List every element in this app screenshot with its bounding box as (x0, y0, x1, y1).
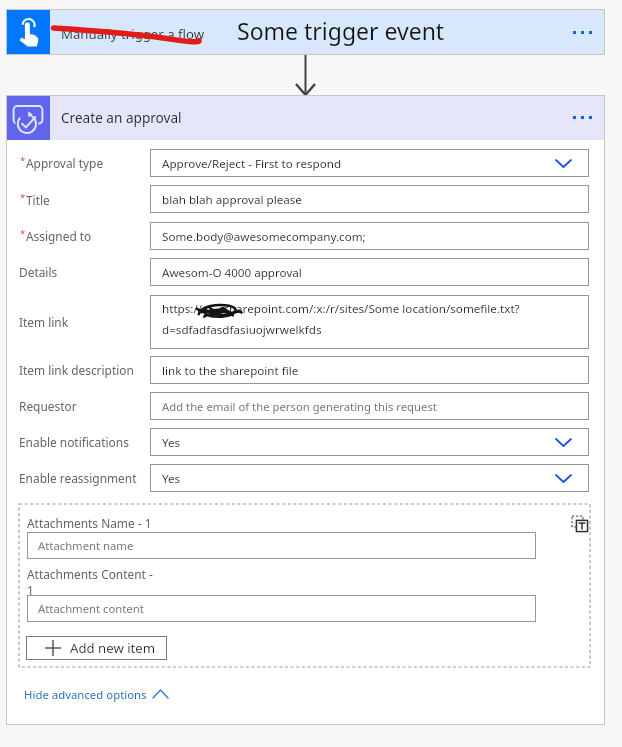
staticText: Attachments Content - (27, 566, 153, 582)
staticText: Attachment content (38, 601, 144, 616)
staticText: Add the email of the person generating t… (162, 399, 437, 414)
staticText: Title (26, 192, 50, 208)
staticText: 1 (27, 582, 34, 598)
button[interactable]: More options (566, 109, 599, 126)
button[interactable]: Awesom-O 4000 approval (150, 258, 589, 286)
staticText: Assigned to (26, 228, 92, 244)
button[interactable]: Switch to text mode (571, 515, 589, 533)
staticText: Requestor (19, 398, 77, 414)
button[interactable]: blah blah approval please (150, 185, 589, 213)
staticText: Some trigger event (237, 15, 445, 46)
staticText: Approval type (26, 155, 104, 171)
staticText: Enable reassignment (19, 470, 137, 486)
button[interactable]: Add the email of the person generating t… (150, 392, 589, 420)
staticText: https:// sharepoint.com/:x:/r/sites/Some… (162, 301, 520, 317)
staticText: Manually trigger a flow (61, 25, 205, 43)
staticText: Yes (162, 471, 181, 487)
staticText: Attachments Name - 1 (27, 515, 152, 531)
button[interactable]: Attachment content (27, 595, 536, 622)
staticText: blah blah approval please (162, 192, 302, 208)
staticText: Details (19, 264, 58, 280)
staticText: Add new item (70, 639, 156, 657)
staticText: * (20, 227, 26, 240)
button[interactable]: Manually trigger a flow (6, 9, 605, 55)
button[interactable]: Some.body@awesomecompany.com; (150, 222, 589, 250)
button[interactable]: Approve/Reject - First to respond (150, 149, 589, 177)
staticText: Some.body@awesomecompany.com; (162, 229, 366, 245)
staticText: Approve/Reject - First to respond (162, 156, 342, 172)
staticText: * (20, 154, 26, 167)
staticText: Create an approval (61, 108, 182, 127)
button[interactable]: link to the sharepoint file (150, 356, 589, 384)
staticText: Hide advanced options (24, 687, 147, 703)
button[interactable]: Create an approval (6, 95, 605, 140)
staticText: link to the sharepoint file (162, 363, 299, 379)
button[interactable]: More options (566, 24, 599, 41)
staticText: d=sdfadfasdfasiuojwrwelkfds (162, 322, 322, 338)
button[interactable]: Yes (150, 428, 589, 456)
staticText: Yes (162, 435, 181, 451)
button[interactable]: Attachment name (27, 532, 536, 559)
button[interactable]: Add new item (26, 636, 167, 660)
staticText: Enable notifications (19, 434, 129, 450)
staticText: Item link (19, 314, 69, 330)
button[interactable]: Yes (150, 464, 589, 492)
staticText: Attachment name (38, 538, 134, 553)
button[interactable]: Hide advanced options (24, 687, 168, 703)
staticText: * (20, 191, 26, 204)
staticText: Awesom-O 4000 approval (162, 265, 302, 281)
button[interactable]: https:// sharepoint.com/:x:/r/sites/Some… (150, 295, 589, 349)
staticText: Item link description (19, 362, 134, 378)
